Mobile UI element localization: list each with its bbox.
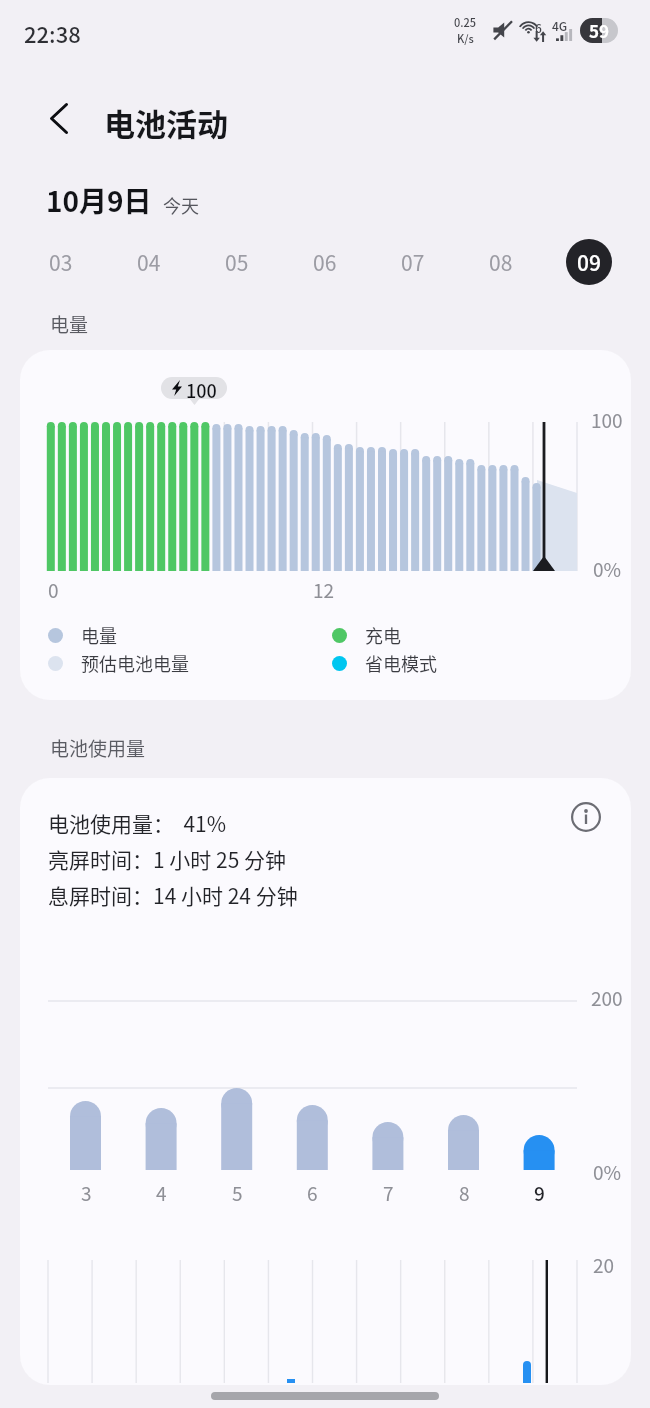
staticText: 7 xyxy=(383,1179,394,1207)
staticText: 4 xyxy=(156,1179,167,1207)
staticText: 亮屏时间：1 小时 25 分钟 xyxy=(48,844,287,874)
staticText: K/s xyxy=(457,30,474,46)
button[interactable]: 05 xyxy=(214,239,260,285)
staticText: 03 xyxy=(49,247,73,277)
staticText: 09 xyxy=(577,247,601,277)
staticText: 4G xyxy=(552,17,568,34)
button[interactable]: Back xyxy=(33,92,85,144)
staticText: 0 xyxy=(48,576,59,604)
button[interactable]: 04 xyxy=(126,239,172,285)
staticText: 6 xyxy=(535,19,542,36)
staticText: 电量 xyxy=(50,310,89,338)
button[interactable]: 08 xyxy=(478,239,524,285)
staticText: 8 xyxy=(459,1179,470,1207)
staticText: 20 xyxy=(593,1251,615,1279)
staticText: 预估电池电量 xyxy=(81,650,189,676)
staticText: 06 xyxy=(313,247,337,277)
staticText: 电池使用量： 41% xyxy=(48,808,227,838)
staticText: 5 xyxy=(232,1179,243,1207)
staticText: 0% xyxy=(593,555,622,583)
staticText: 3 xyxy=(81,1179,92,1207)
button[interactable]: 06 xyxy=(302,239,348,285)
staticText: 0% xyxy=(593,1158,622,1186)
staticText: 息屏时间：14 小时 24 分钟 xyxy=(48,880,298,910)
staticText: 充电 xyxy=(365,622,401,648)
staticText: 12 xyxy=(313,576,335,604)
button[interactable]: 03 xyxy=(38,239,84,285)
staticText: 电量 xyxy=(81,622,117,648)
staticText: 59 xyxy=(589,18,610,43)
staticText: 100 xyxy=(186,377,217,399)
staticText: 22:38 xyxy=(24,17,81,49)
staticText: 6 xyxy=(307,1179,318,1207)
button[interactable]: Info xyxy=(560,791,612,843)
staticText: 04 xyxy=(137,247,161,277)
staticText: 0.25 xyxy=(454,14,477,30)
staticText: 100 xyxy=(591,406,623,434)
staticText: 10月9日 xyxy=(46,180,152,221)
staticText: 电池活动 xyxy=(104,100,228,145)
staticText: 200 xyxy=(591,984,623,1012)
button[interactable]: 09 xyxy=(566,239,612,285)
staticText: 08 xyxy=(489,247,513,277)
staticText: 9 xyxy=(534,1179,545,1207)
staticText: 电池使用量 xyxy=(50,734,146,762)
staticText: 今天 xyxy=(163,192,199,218)
staticText: 07 xyxy=(401,247,425,277)
button[interactable]: 07 xyxy=(390,239,436,285)
staticText: 05 xyxy=(225,247,249,277)
staticText: 省电模式 xyxy=(365,650,437,676)
